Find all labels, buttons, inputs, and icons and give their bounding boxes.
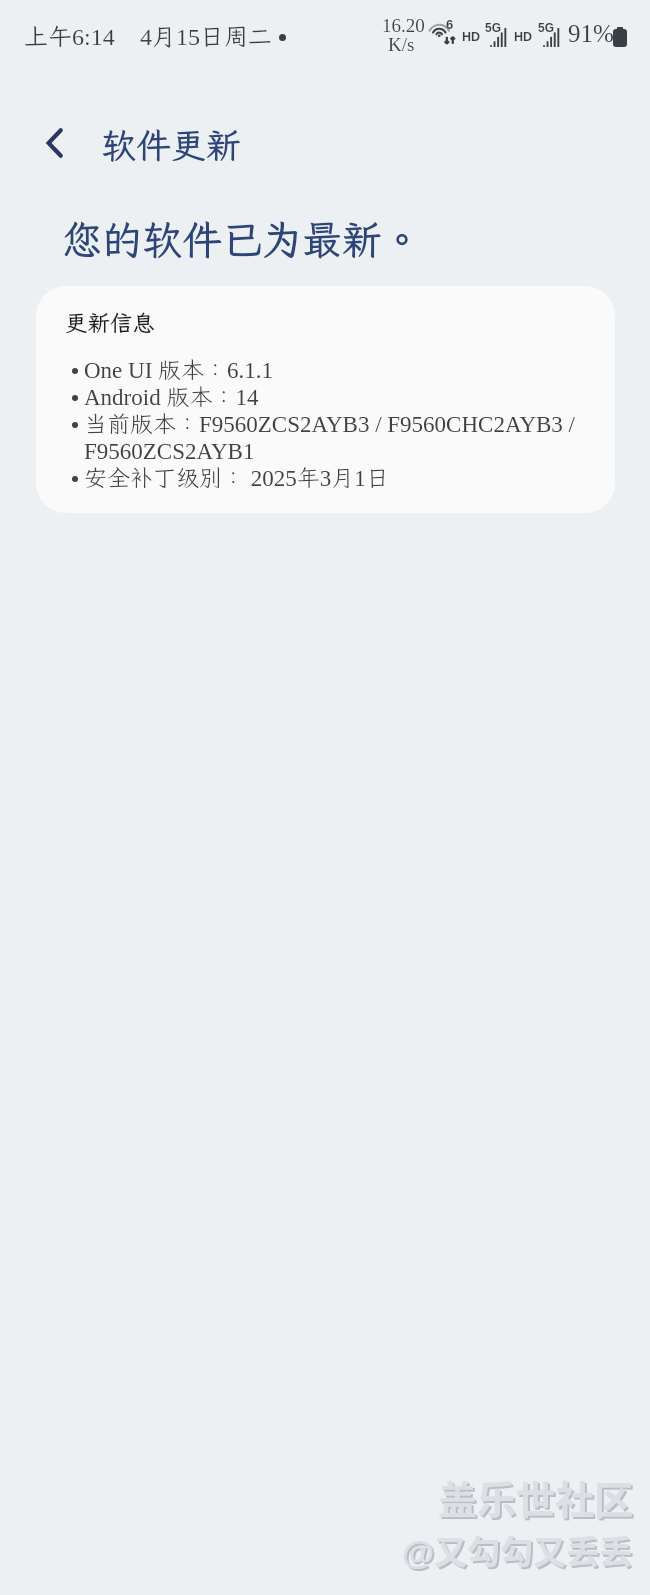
button[interactable]: Back <box>30 118 80 168</box>
